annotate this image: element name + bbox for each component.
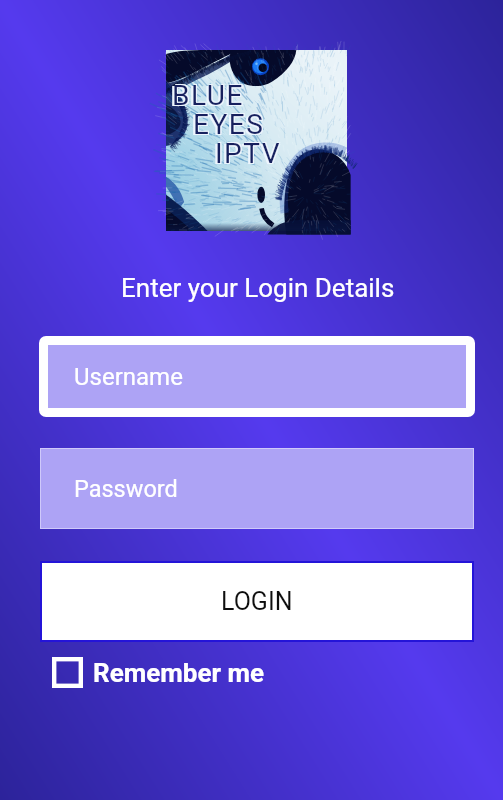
button[interactable]: LOGIN <box>42 563 472 640</box>
button[interactable]: Username <box>48 345 466 408</box>
staticText: Username <box>74 363 183 391</box>
staticText: Enter your Login Details <box>121 273 395 303</box>
staticText: IPTV <box>213 138 280 171</box>
staticText: IPTV <box>215 137 282 170</box>
staticText: EYES <box>191 109 263 142</box>
staticText: Remember me <box>93 658 264 688</box>
staticText: BLUE <box>173 80 245 113</box>
staticText: LOGIN <box>221 587 293 616</box>
staticText: EYES <box>194 107 266 140</box>
button[interactable]: Password <box>41 449 473 528</box>
staticText: BLUE <box>170 80 242 113</box>
staticText: BLUE <box>172 79 244 112</box>
staticText: EYES <box>193 108 265 141</box>
staticText: BLUE <box>173 78 245 111</box>
staticText: Password <box>74 475 178 503</box>
button[interactable]: Remember me <box>52 657 264 688</box>
staticText: IPTV <box>216 136 283 169</box>
staticText: IPTV <box>216 138 283 171</box>
staticText: EYES <box>194 109 266 142</box>
